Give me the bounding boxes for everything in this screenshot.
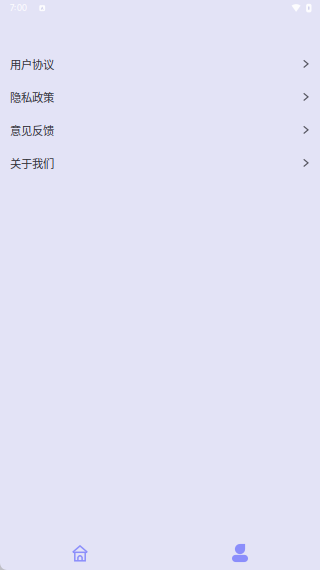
button[interactable]: 意见反馈: [0, 114, 320, 147]
button[interactable]: 关于我们: [0, 147, 320, 180]
staticText: 7:00: [10, 3, 27, 13]
button[interactable]: Home: [0, 536, 160, 570]
staticText: 用户协议: [10, 56, 54, 72]
button[interactable]: Profile: [160, 536, 320, 570]
button[interactable]: 用户协议: [0, 48, 320, 81]
staticText: 隐私政策: [10, 89, 54, 105]
staticText: 关于我们: [10, 155, 54, 171]
staticText: 意见反馈: [10, 122, 54, 138]
button[interactable]: 隐私政策: [0, 81, 320, 114]
